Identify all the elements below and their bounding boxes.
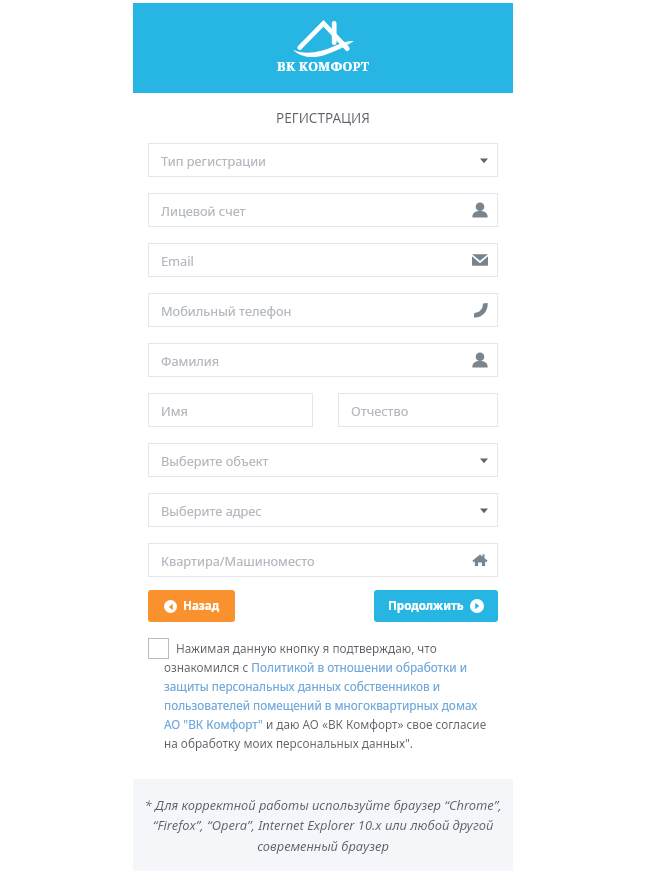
button[interactable]: Лицевой счет (148, 193, 498, 227)
button[interactable]: Тип регистрации (148, 143, 498, 177)
staticText: Имя (161, 402, 188, 419)
staticText: РЕГИСТРАЦИЯ (133, 109, 513, 127)
staticText: Назад (183, 598, 220, 614)
staticText: Тип регистрации (161, 152, 267, 169)
staticText: Отчество (351, 402, 409, 419)
staticText: Лицевой счет (161, 202, 246, 219)
button[interactable]: Имя (148, 393, 313, 427)
button[interactable]: Отчество (338, 393, 498, 427)
button[interactable]: Согласие на обработку персональных данны… (148, 638, 169, 659)
staticText: Email (161, 252, 194, 269)
button[interactable]: Выберите адрес (148, 493, 498, 527)
other: Логотип ВК Комфорт (293, 21, 354, 56)
button[interactable]: Email (148, 243, 498, 277)
staticText: Выберите объект (161, 452, 269, 469)
button[interactable]: Мобильный телефон (148, 293, 498, 327)
staticText: Фамилия (161, 352, 220, 369)
button[interactable]: Продолжить (374, 590, 498, 622)
button[interactable]: Выберите объект (148, 443, 498, 477)
staticText: ВК КОМФОРТ (277, 58, 370, 75)
staticText: Продолжить (388, 598, 464, 614)
staticText: Мобильный телефон (161, 302, 292, 319)
staticText: * Для корректной работы используйте брау… (143, 796, 503, 855)
staticText: Квартира/Машиноместо (161, 552, 315, 569)
button[interactable]: Фамилия (148, 343, 498, 377)
button[interactable]: Квартира/Машиноместо (148, 543, 498, 577)
button[interactable]: Нажимая данную кнопку я подтверждаю, что… (164, 640, 493, 751)
button[interactable]: Назад (148, 590, 235, 622)
staticText: Выберите адрес (161, 502, 262, 519)
